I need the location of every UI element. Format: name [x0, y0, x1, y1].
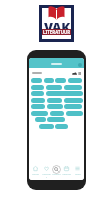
staticText: Agenda [62, 172, 71, 175]
button[interactable]: Home [31, 164, 40, 175]
button[interactable]: Zoeken [52, 165, 61, 174]
button[interactable] [31, 98, 45, 103]
button[interactable] [46, 91, 83, 96]
button[interactable] [68, 78, 82, 83]
button[interactable] [50, 111, 64, 116]
staticText: Home [32, 172, 39, 175]
button[interactable] [44, 78, 54, 83]
staticText: Zoeken [52, 172, 61, 175]
button[interactable] [31, 85, 44, 90]
button[interactable]: Zoeken [52, 164, 61, 175]
button[interactable] [46, 85, 62, 90]
button[interactable] [31, 78, 42, 83]
button[interactable] [31, 111, 48, 116]
button[interactable]: Favoriet [42, 164, 51, 178]
button[interactable]: Meer [73, 164, 82, 175]
button[interactable] [39, 124, 54, 129]
button[interactable] [47, 98, 62, 103]
button[interactable] [55, 78, 66, 83]
button[interactable] [47, 104, 63, 109]
button[interactable] [31, 104, 45, 109]
button[interactable]: Zoekveld [29, 68, 84, 78]
button[interactable] [31, 91, 44, 96]
staticText: LITERATUUR [43, 29, 71, 35]
staticText: Favoriet [42, 172, 51, 178]
staticText: Meer [75, 172, 81, 175]
button[interactable] [35, 117, 46, 122]
button[interactable] [66, 111, 83, 116]
button[interactable] [64, 98, 83, 103]
button[interactable] [64, 85, 82, 90]
button[interactable]: Profiel [78, 63, 82, 67]
button[interactable] [47, 117, 65, 122]
button[interactable] [64, 104, 82, 109]
button[interactable] [55, 124, 68, 129]
staticText: VAK [44, 18, 70, 30]
button[interactable]: Agenda [62, 164, 71, 175]
